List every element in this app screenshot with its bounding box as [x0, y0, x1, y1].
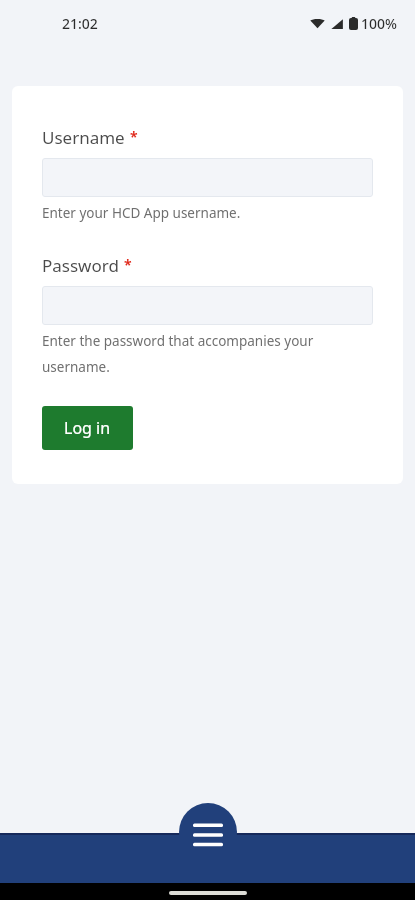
- staticText: *: [124, 255, 132, 274]
- staticText: 21:02: [62, 14, 98, 33]
- staticText: Password: [42, 254, 119, 277]
- button[interactable]: [42, 158, 373, 197]
- staticText: Enter the password that accompanies your…: [42, 332, 373, 376]
- staticText: *: [130, 127, 138, 146]
- staticText: 100%: [361, 14, 397, 33]
- staticText: Enter your HCD App username.: [42, 204, 241, 222]
- button[interactable]: Menu: [179, 803, 237, 861]
- button[interactable]: [42, 286, 373, 325]
- staticText: Username: [42, 126, 125, 149]
- button[interactable]: Log in: [42, 406, 133, 450]
- staticText: Log in: [64, 417, 111, 439]
